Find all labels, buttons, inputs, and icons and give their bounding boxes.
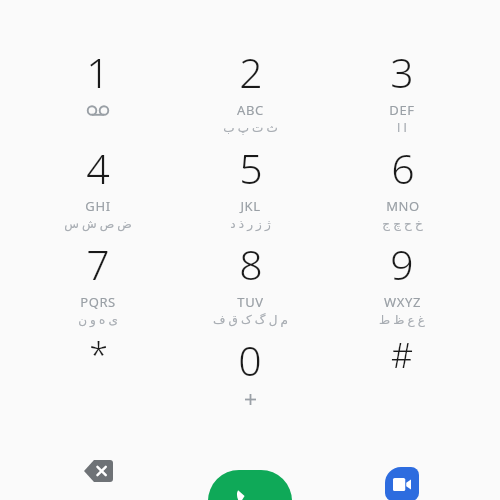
button[interactable]: 7: [22, 236, 174, 332]
button[interactable]: 3: [326, 44, 478, 140]
staticText: 5: [239, 140, 263, 196]
staticText: ی ه و ن: [78, 311, 118, 327]
button[interactable]: 8: [174, 236, 326, 332]
button[interactable]: 0: [174, 332, 326, 424]
staticText: 7: [86, 236, 110, 292]
staticText: ژ ز ر ذ د: [230, 215, 271, 231]
staticText: 8: [239, 236, 263, 292]
button[interactable]: Call: [208, 470, 292, 500]
button[interactable]: 5: [174, 140, 326, 236]
staticText: ا ا: [397, 119, 407, 135]
staticText: 1: [86, 44, 110, 100]
staticText: م ل گ ک ق ف: [213, 311, 288, 327]
staticText: *: [89, 332, 108, 378]
button[interactable]: Backspace: [70, 443, 126, 499]
staticText: 3: [390, 44, 414, 100]
staticText: 6: [391, 140, 415, 196]
staticText: JKL: [240, 197, 261, 215]
button[interactable]: #: [326, 332, 478, 424]
staticText: 4: [86, 140, 110, 196]
staticText: ث ت پ ب: [223, 119, 278, 135]
button[interactable]: 1: [22, 44, 174, 140]
staticText: WXYZ: [384, 293, 421, 311]
staticText: 0: [238, 332, 262, 388]
button[interactable]: 2: [174, 44, 326, 140]
button[interactable]: 6: [326, 140, 478, 236]
staticText: خ ح چ ج: [382, 215, 423, 231]
staticText: PQRS: [80, 293, 116, 311]
staticText: DEF: [389, 101, 415, 119]
staticText: TUV: [237, 293, 264, 311]
button[interactable]: *: [22, 332, 174, 424]
staticText: MNO: [386, 197, 420, 215]
staticText: ABC: [237, 101, 264, 119]
button[interactable]: 9: [326, 236, 478, 332]
button[interactable]: 4: [22, 140, 174, 236]
staticText: #: [391, 332, 413, 378]
staticText: ض ص ش س: [64, 215, 132, 231]
staticText: GHI: [85, 197, 111, 215]
staticText: 9: [390, 236, 414, 292]
staticText: 2: [239, 44, 263, 100]
staticText: غ ع ظ ط: [379, 311, 425, 327]
button[interactable]: Video call: [374, 456, 430, 500]
